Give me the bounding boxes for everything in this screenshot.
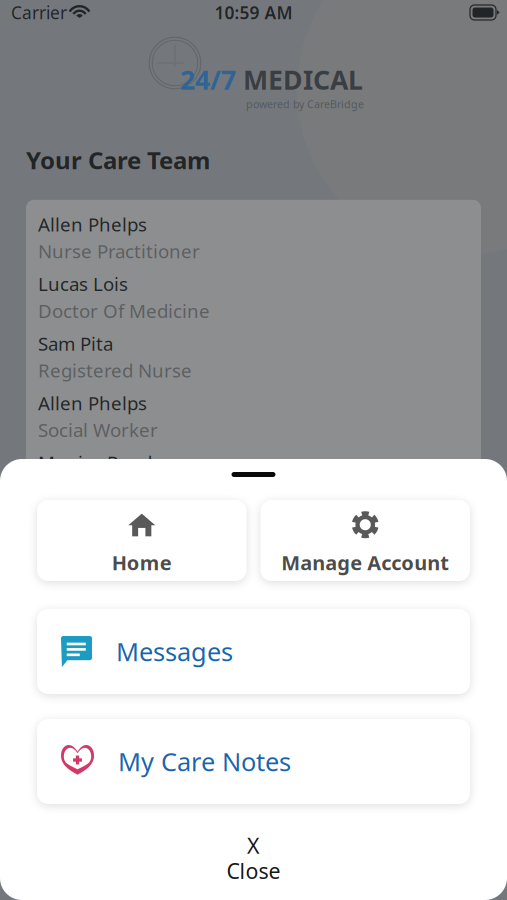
staticText: Your Care Team xyxy=(26,144,210,176)
staticText: powered by CareBridge xyxy=(246,97,364,111)
button[interactable]: My Care Notes xyxy=(37,719,470,804)
staticText: 24/7 xyxy=(180,62,243,97)
button[interactable]: Manage Account xyxy=(260,500,470,581)
button[interactable]: X xyxy=(0,831,507,900)
staticText: Home xyxy=(112,549,172,576)
staticText: Close xyxy=(226,857,280,885)
staticText: 10:59 AM xyxy=(214,1,292,24)
staticText: Sam Pita xyxy=(38,331,113,356)
staticText: X xyxy=(247,831,260,860)
staticText: Monica Reed xyxy=(38,450,152,475)
staticText: Manage Account xyxy=(281,549,449,576)
staticText: Social Worker xyxy=(38,417,158,442)
staticText: Messages xyxy=(116,635,233,668)
staticText: Allen Phelps xyxy=(38,391,147,415)
staticText: Carrier xyxy=(11,1,67,24)
staticText: Registered Nurse xyxy=(38,358,192,383)
staticText: Lucas Lois xyxy=(38,271,128,296)
staticText: My Care Notes xyxy=(118,745,291,778)
staticText: Nurse Practitioner xyxy=(38,239,200,263)
button[interactable]: Messages xyxy=(37,609,470,694)
button[interactable]: Home xyxy=(37,500,246,581)
staticText: Doctor Of Medicine xyxy=(38,298,210,323)
staticText: MEDICAL xyxy=(243,62,363,97)
staticText: Allen Phelps xyxy=(38,212,147,237)
